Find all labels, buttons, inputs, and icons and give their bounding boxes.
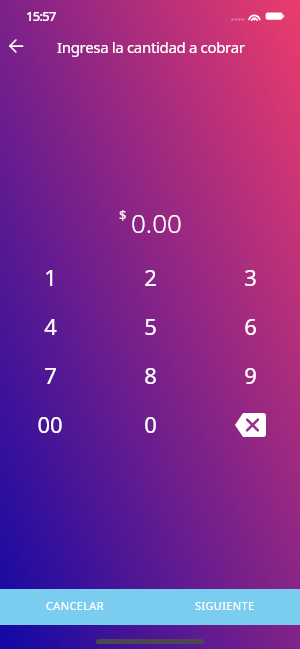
staticText: 4 xyxy=(44,311,57,341)
staticText: Ingresa la cantidad a cobrar xyxy=(57,37,245,57)
button[interactable]: CANCELAR xyxy=(0,589,150,625)
staticText: 3 xyxy=(244,262,257,292)
button[interactable]: 7 xyxy=(0,350,100,399)
staticText: 5 xyxy=(144,311,157,341)
staticText: 15:57 xyxy=(26,7,56,25)
staticText: 00 xyxy=(37,409,63,439)
button[interactable]: Back xyxy=(0,28,31,64)
button[interactable]: 6 xyxy=(200,301,300,350)
button[interactable]: 1 xyxy=(0,252,100,301)
staticText: 0.00 xyxy=(131,205,182,240)
button[interactable]: 9 xyxy=(200,350,300,399)
button[interactable]: Backspace xyxy=(200,399,300,448)
button[interactable]: 00 xyxy=(0,399,100,448)
button[interactable]: 0 xyxy=(100,399,200,448)
button[interactable]: 5 xyxy=(100,301,200,350)
button[interactable]: SIGUIENTE xyxy=(150,589,300,625)
staticText: 7 xyxy=(44,360,57,390)
staticText: 6 xyxy=(244,311,257,341)
staticText: SIGUIENTE xyxy=(195,598,255,613)
button[interactable]: 3 xyxy=(200,252,300,301)
staticText: 9 xyxy=(244,360,257,390)
staticText: CANCELAR xyxy=(46,598,104,613)
button[interactable]: 8 xyxy=(100,350,200,399)
staticText: 8 xyxy=(144,360,157,390)
staticText: $ xyxy=(119,206,127,224)
staticText: 0 xyxy=(144,409,157,439)
button[interactable]: 2 xyxy=(100,252,200,301)
button[interactable]: 4 xyxy=(0,301,100,350)
staticText: 2 xyxy=(144,262,157,292)
staticText: 1 xyxy=(44,262,57,292)
